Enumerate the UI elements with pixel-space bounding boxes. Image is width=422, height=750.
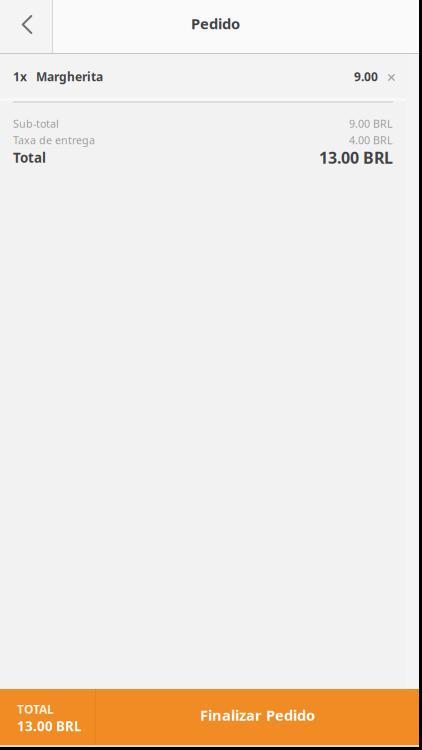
staticText: Total <box>13 149 46 166</box>
button[interactable]: 1x <box>0 54 378 101</box>
button[interactable]: TOTAL <box>0 689 95 745</box>
button[interactable]: Back <box>0 0 52 53</box>
staticText: 1x <box>13 68 27 84</box>
staticText: 9.00 BRL <box>349 116 393 131</box>
button[interactable]: Remove Margherita <box>378 54 419 101</box>
staticText: TOTAL <box>17 701 54 717</box>
staticText: Finalizar Pedido <box>200 705 315 725</box>
button[interactable]: Finalizar Pedido <box>96 689 419 745</box>
staticText: Taxa de entrega <box>13 133 95 147</box>
staticText: Sub-total <box>13 116 59 131</box>
staticText: 9.00 <box>354 68 378 84</box>
staticText: 4.00 BRL <box>349 133 393 147</box>
staticText: Pedido <box>191 14 240 33</box>
staticText: 13.00 BRL <box>319 147 393 168</box>
staticText: 13.00 BRL <box>17 717 81 735</box>
staticText: Margherita <box>36 68 103 84</box>
